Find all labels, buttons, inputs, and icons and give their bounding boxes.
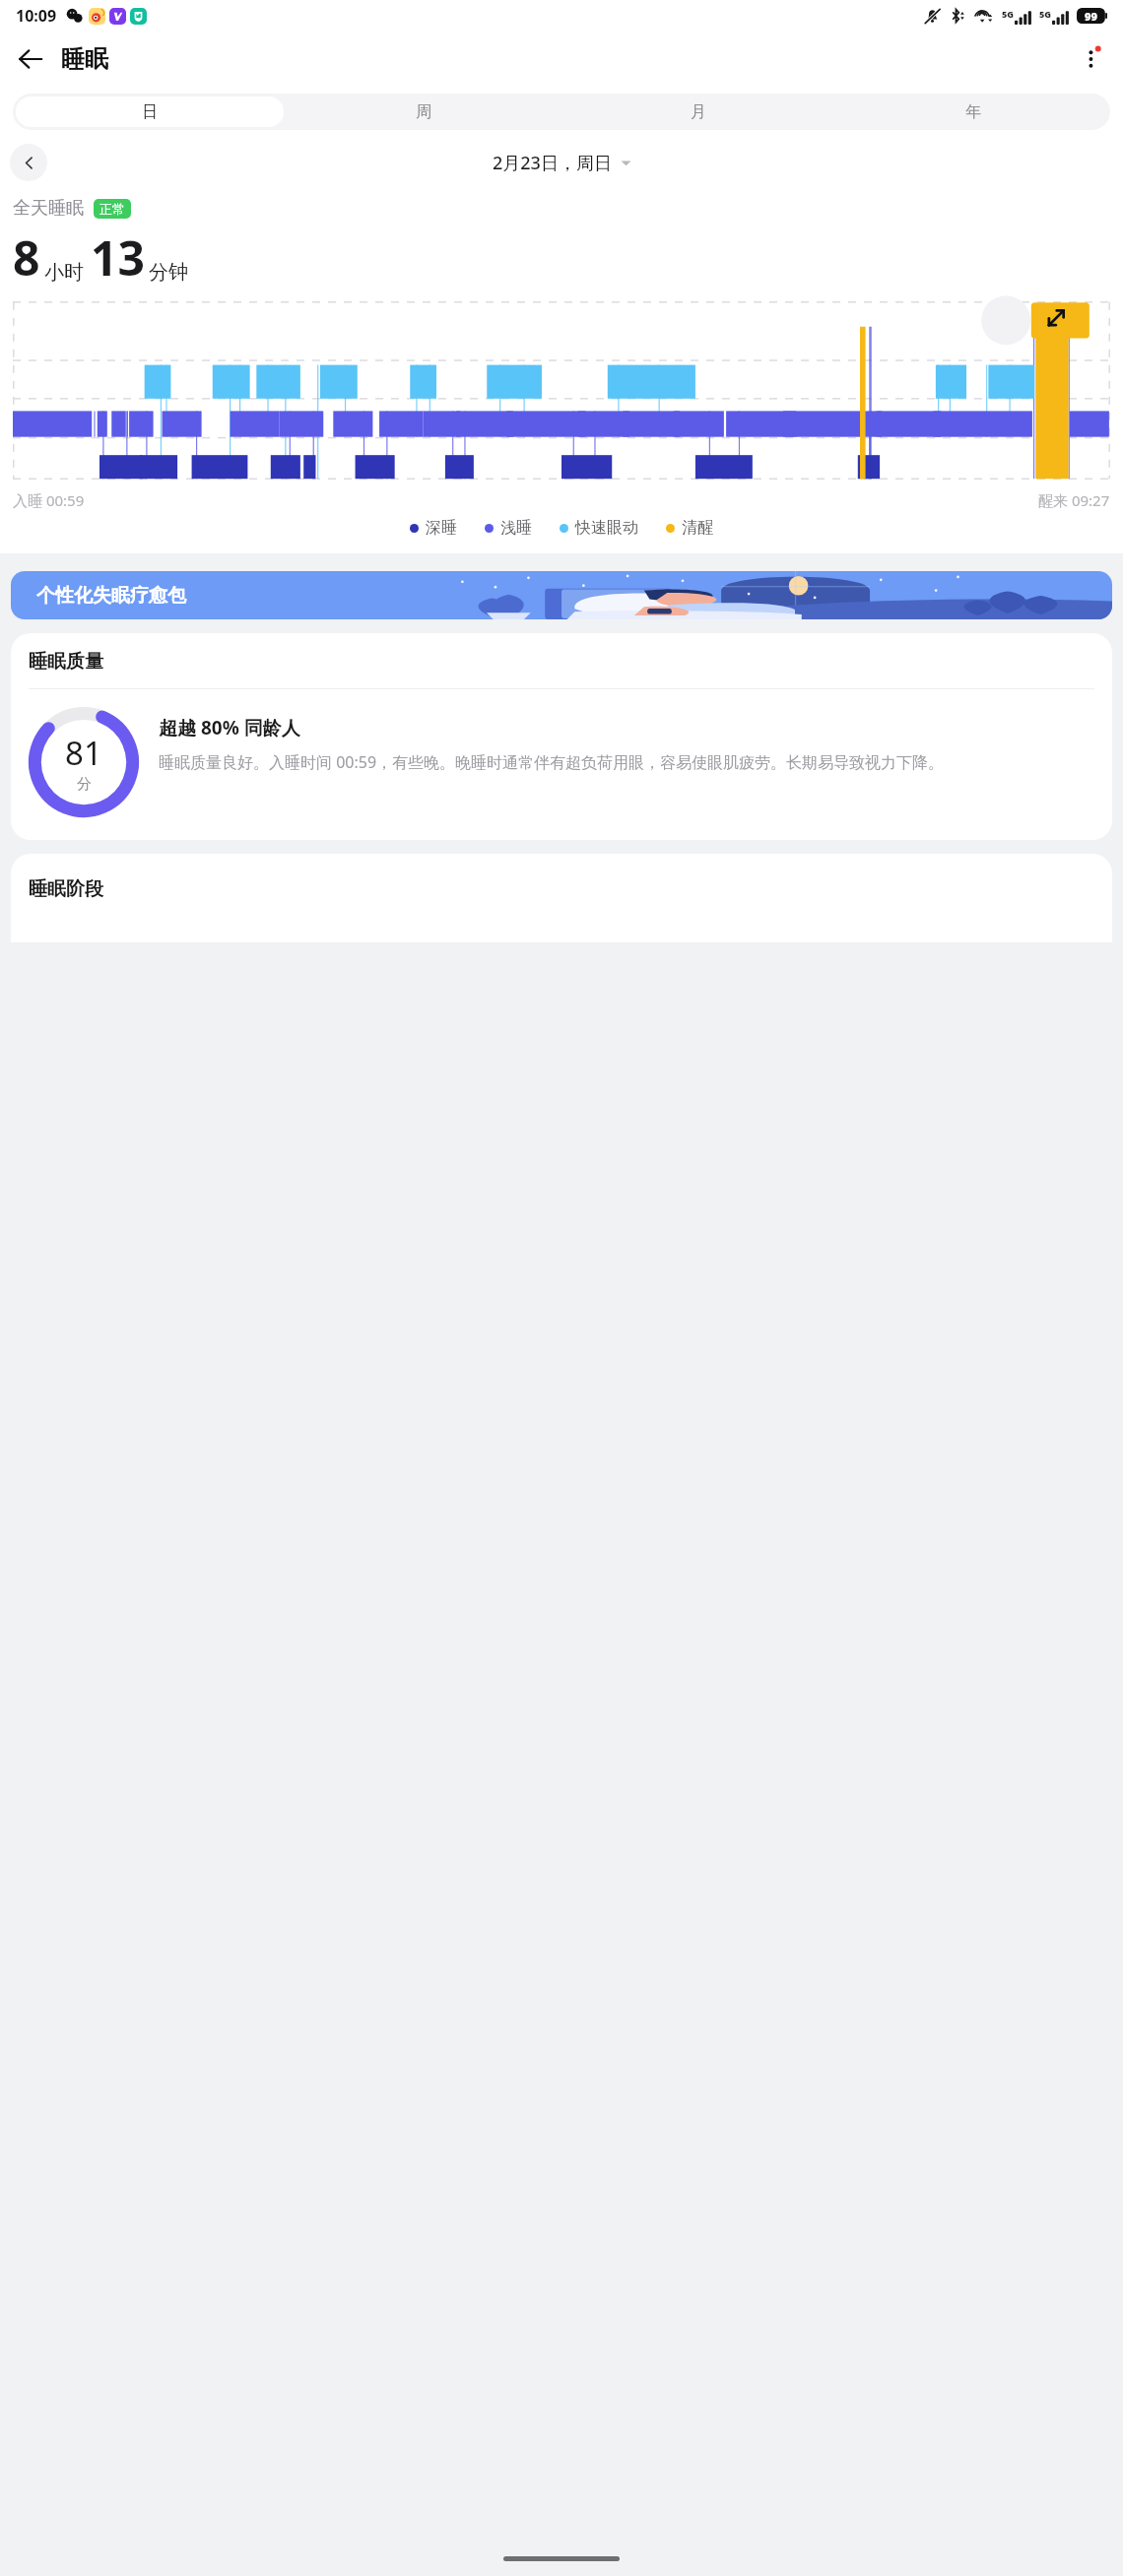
button[interactable]: 月 — [563, 97, 832, 127]
staticText: 快速眼动 — [575, 518, 638, 538]
staticText: 全天睡眠 — [13, 197, 84, 220]
button[interactable]: Back — [6, 34, 55, 84]
staticText: 睡眠 — [61, 44, 108, 74]
staticText: 超越 80% 同龄人 — [159, 715, 300, 741]
staticText: 周 — [416, 102, 431, 122]
staticText: 个性化失眠疗愈包 — [36, 584, 186, 608]
button[interactable]: 快速眼动 — [560, 518, 638, 538]
button[interactable]: 睡眠阶段 — [11, 854, 1112, 942]
button[interactable]: 周 — [290, 97, 558, 127]
button[interactable]: 日 — [16, 97, 284, 127]
button[interactable]: 个性化失眠疗愈包 — [11, 571, 1112, 619]
staticText: 10:09 — [16, 5, 57, 27]
button[interactable]: 深睡 — [410, 518, 457, 538]
staticText: 5G — [1002, 8, 1014, 20]
staticText: 深睡 — [426, 518, 457, 538]
button[interactable]: 2月23日，周日 — [493, 151, 631, 175]
staticText: 醒来 09:27 — [1038, 490, 1110, 510]
button[interactable]: More options — [1068, 34, 1117, 84]
staticText: 分 — [77, 775, 92, 794]
staticText: 月 — [691, 102, 706, 122]
button[interactable]: Expand chart — [1067, 299, 1110, 343]
staticText: 浅睡 — [500, 518, 532, 538]
staticText: 2月23日，周日 — [493, 151, 612, 175]
button[interactable]: Previous day — [10, 144, 47, 181]
staticText: 5G — [1039, 8, 1051, 20]
staticText: 正常 — [99, 201, 125, 217]
staticText: 睡眠阶段 — [29, 877, 103, 901]
staticText: 入睡 00:59 — [13, 490, 85, 510]
staticText: 睡眠质量良好。入睡时间 00:59，有些晚。晚睡时通常伴有超负荷用眼，容易使眼肌… — [159, 751, 945, 773]
staticText: 睡眠质量 — [29, 650, 103, 674]
staticText: 清醒 — [682, 518, 713, 538]
button[interactable]: 睡眠质量 — [11, 633, 1112, 840]
staticText: 81 — [65, 731, 102, 775]
button[interactable]: 清醒 — [666, 518, 713, 538]
staticText: 8 — [13, 225, 40, 290]
staticText: 99 — [1085, 9, 1097, 24]
staticText: 年 — [965, 102, 981, 122]
staticText: 小时 — [44, 260, 84, 285]
staticText: 分钟 — [149, 260, 188, 285]
button[interactable]: 年 — [838, 97, 1107, 127]
staticText: 13 — [91, 225, 145, 290]
staticText: 日 — [142, 102, 158, 122]
button[interactable]: 浅睡 — [485, 518, 532, 538]
